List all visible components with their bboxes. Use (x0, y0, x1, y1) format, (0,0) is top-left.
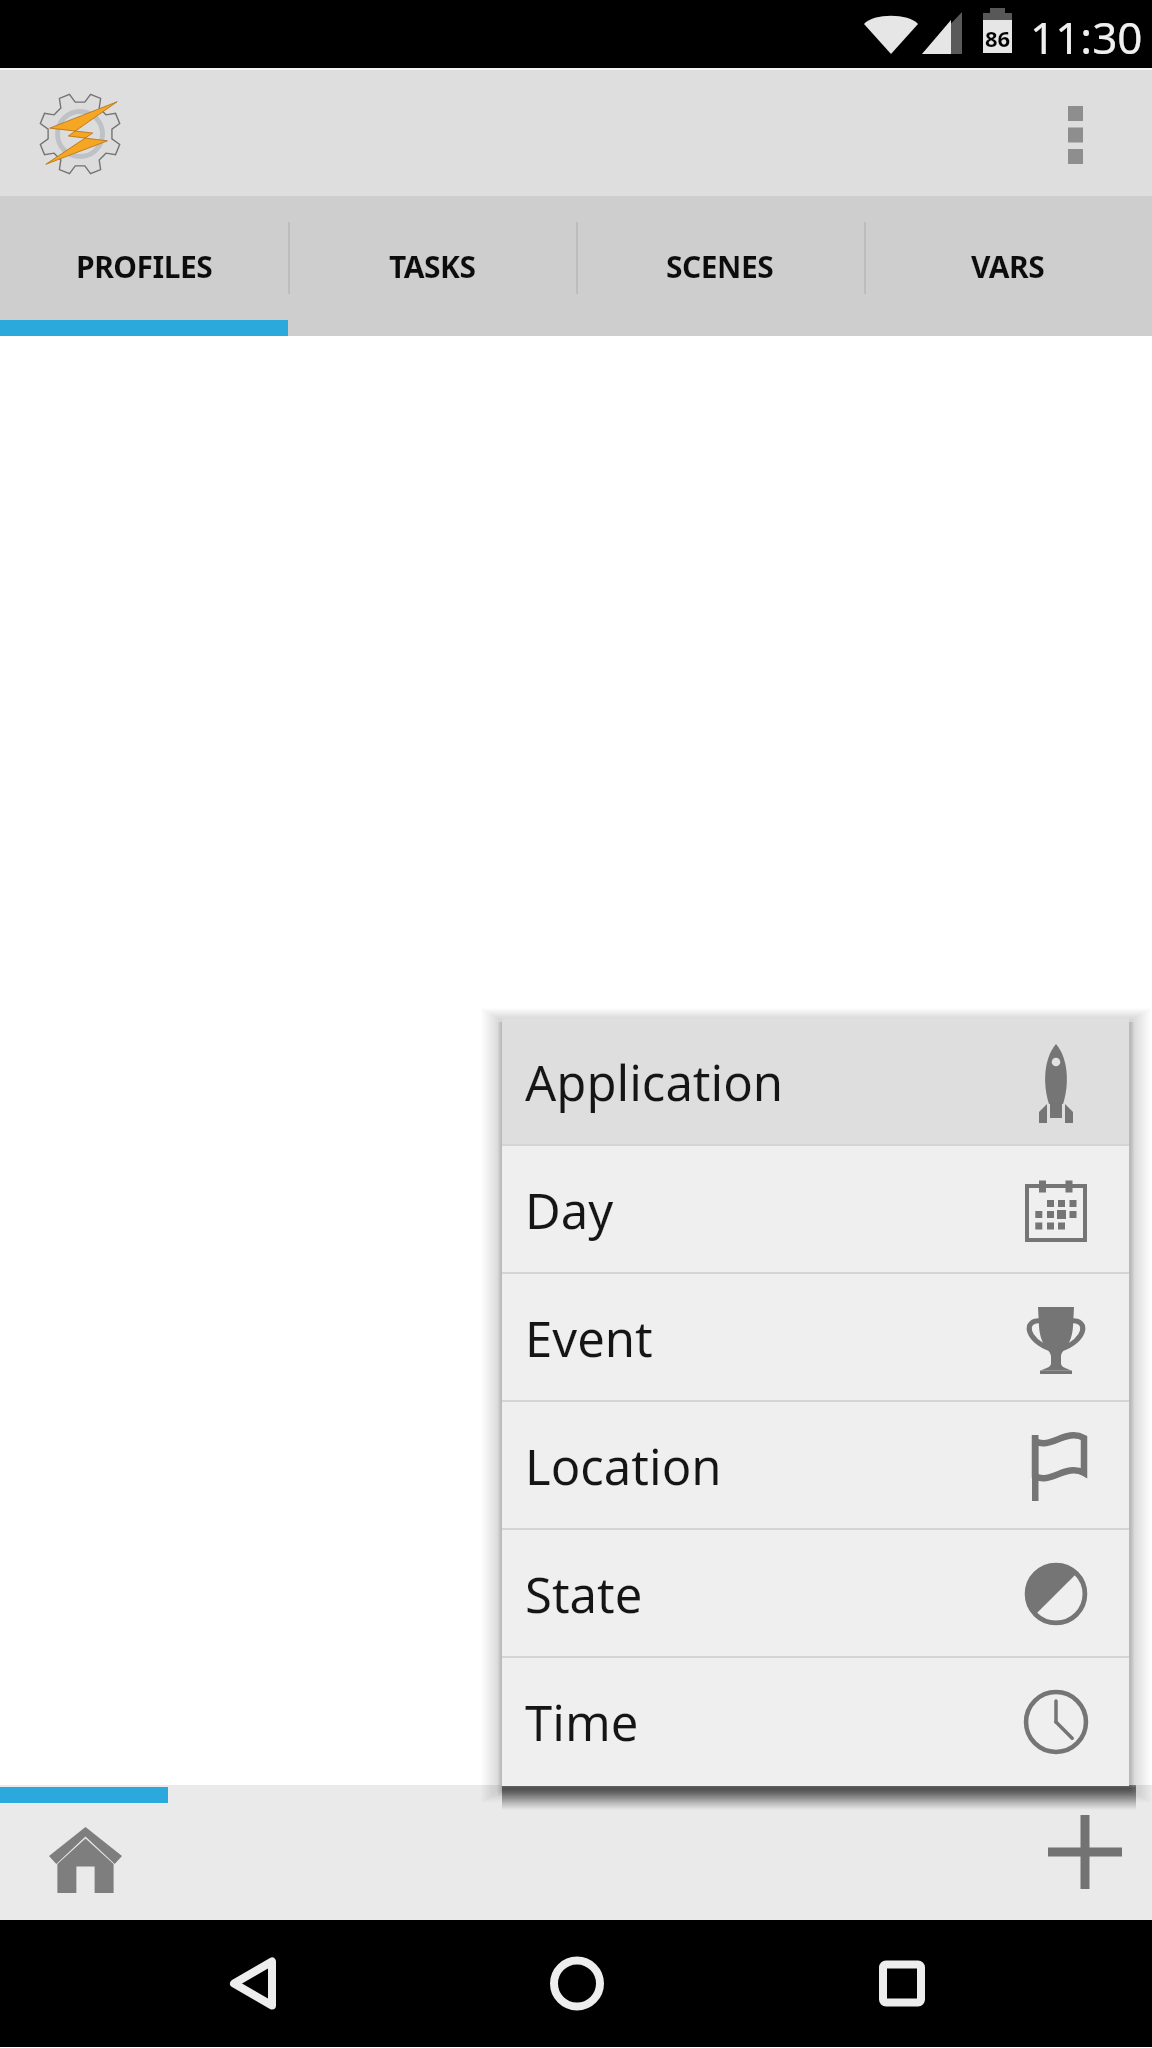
staticText: VARS (971, 246, 1045, 287)
button[interactable]: VARS (864, 196, 1152, 320)
button[interactable]: Add (1020, 1794, 1150, 1909)
staticText: Time (525, 1689, 983, 1756)
staticText: Application (525, 1049, 983, 1116)
button[interactable]: Time (502, 1658, 1129, 1786)
staticText: 86 (983, 23, 1012, 53)
button[interactable]: TASKS (288, 196, 576, 320)
button[interactable]: Application (502, 1018, 1129, 1146)
button[interactable]: More options (1024, 68, 1152, 196)
button[interactable]: PROFILES (0, 196, 288, 320)
staticText: Event (525, 1305, 983, 1372)
button[interactable]: State (502, 1530, 1129, 1658)
button[interactable]: Recents (817, 1920, 977, 2047)
button[interactable]: Day (502, 1146, 1129, 1274)
staticText: Location (525, 1433, 983, 1500)
button[interactable]: Location (502, 1402, 1129, 1530)
button[interactable]: SCENES (576, 196, 864, 320)
button[interactable]: Tasker (19, 75, 143, 193)
button[interactable]: Event (502, 1274, 1129, 1402)
button[interactable]: Back (240, 1920, 400, 2047)
staticText: 11:30 (1030, 7, 1143, 67)
staticText: State (525, 1561, 983, 1628)
staticText: SCENES (666, 246, 774, 287)
button[interactable]: Home (20, 1802, 150, 1917)
staticText: PROFILES (76, 246, 213, 287)
button[interactable]: Home (496, 1920, 656, 2047)
staticText: TASKS (389, 246, 476, 287)
staticText: Day (525, 1177, 983, 1244)
